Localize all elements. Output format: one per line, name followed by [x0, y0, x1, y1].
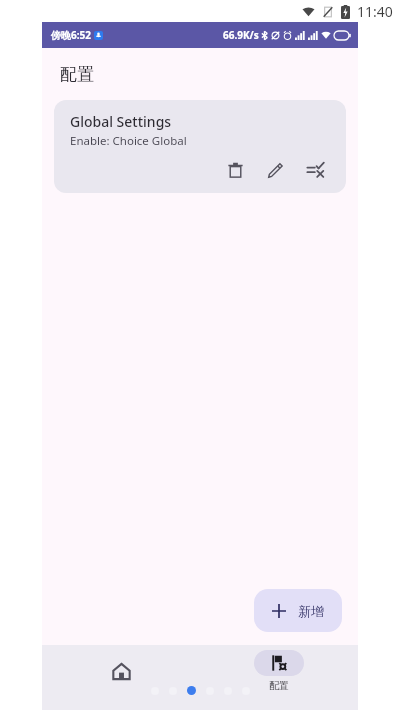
staticText: 新增 [298, 603, 324, 619]
staticText: 11:40 [357, 2, 393, 21]
button[interactable]: Edit [260, 155, 290, 185]
staticText: Enable: Choice Global [70, 133, 187, 149]
button[interactable]: Home [42, 645, 200, 710]
button[interactable]: 新增 [254, 589, 342, 632]
staticText: 配置 [60, 64, 94, 85]
button[interactable]: Global Settings [54, 100, 346, 193]
button[interactable]: Select all [300, 155, 330, 185]
button[interactable]: Delete [220, 155, 250, 185]
staticText: 傍晚6:52 [51, 28, 91, 42]
staticText: 66.9K/s [223, 28, 259, 42]
button[interactable]: 配置 [200, 645, 358, 710]
staticText: 配置 [269, 679, 289, 692]
staticText: Global Settings [70, 112, 172, 131]
